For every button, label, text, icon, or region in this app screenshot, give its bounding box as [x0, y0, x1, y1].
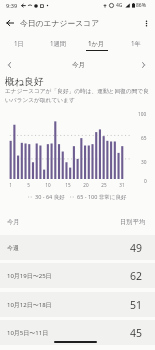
staticText: 100 [138, 111, 147, 118]
staticText: 30 - 64 良好 [35, 193, 65, 201]
staticText: 31 [119, 182, 125, 188]
staticText: 25 [101, 182, 107, 188]
staticText: 62 [130, 269, 143, 283]
staticText: 10月19日〜25日 [7, 272, 52, 280]
button[interactable]: 1年 [116, 35, 155, 53]
button[interactable]: 今週 [0, 235, 155, 260]
staticText: 86% [136, 2, 146, 9]
button[interactable]: 10月12日〜18日 [0, 292, 155, 317]
button[interactable]: 1か月 [77, 35, 116, 53]
staticText: 45 [130, 326, 143, 340]
staticText: 4G [116, 2, 123, 9]
button[interactable]: 1日 [0, 35, 38, 53]
button[interactable]: 10月5日〜11日 [0, 320, 155, 345]
staticText: 49 [130, 241, 143, 255]
button[interactable]: Next month [137, 59, 149, 71]
staticText: 今月 [7, 218, 20, 226]
button[interactable]: Back [0, 13, 19, 33]
staticText: 今日のエナジースコア [20, 18, 100, 28]
staticText: 1日 [14, 39, 24, 47]
staticText: 1 [9, 182, 12, 188]
button[interactable]: Previous month [3, 59, 15, 71]
staticText: 10月5日〜11日 [7, 329, 49, 337]
staticText: 1か月 [88, 39, 105, 47]
staticText: 65 - 100 非常に良好 [77, 193, 127, 201]
staticText: 20 [83, 182, 89, 188]
button[interactable]: 1週間 [38, 35, 77, 53]
staticText: 5 [27, 182, 30, 188]
staticText: 今週 [7, 244, 19, 252]
staticText: 1週間 [50, 39, 66, 47]
staticText: 30 [141, 159, 147, 166]
staticText: 日別平均 [120, 218, 146, 226]
button[interactable]: More options [137, 13, 155, 33]
staticText: 概ね良好 [5, 76, 44, 88]
staticText: エナジースコアが「良好」の時は、運動と回復の間で良いバランスが取れています [5, 88, 153, 104]
staticText: 15 [65, 182, 71, 188]
staticText: 9:39 [6, 2, 18, 10]
staticText: 51 [130, 298, 143, 312]
staticText: 10月12日〜18日 [7, 301, 52, 309]
staticText: 10 [45, 182, 51, 188]
staticText: 今月 [72, 61, 86, 69]
staticText: 1年 [131, 39, 141, 47]
button[interactable]: 10月19日〜25日 [0, 263, 155, 288]
staticText: 0 [144, 178, 147, 185]
staticText: 65 [141, 135, 147, 142]
